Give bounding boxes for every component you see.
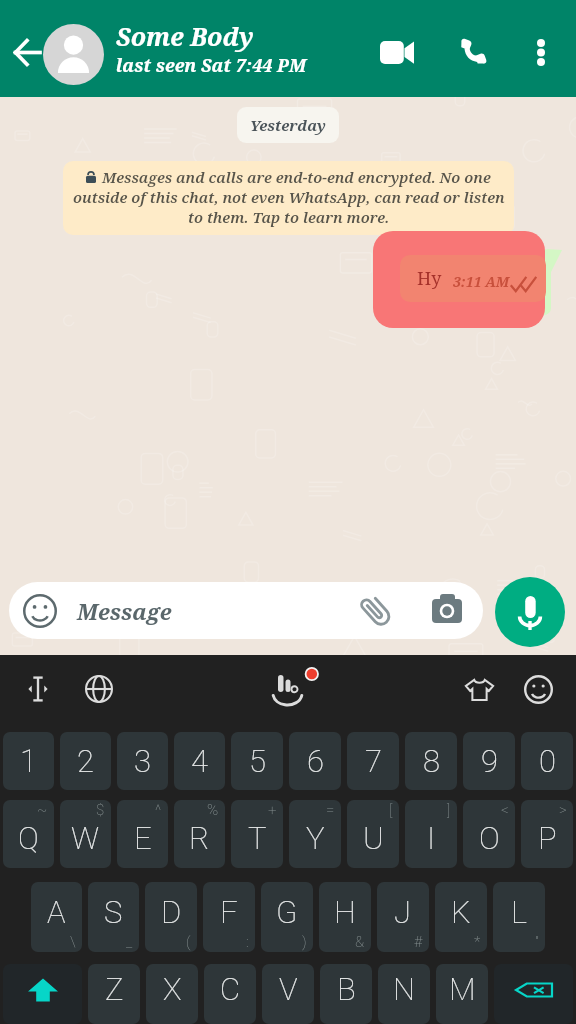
staticText: 4 [191, 743, 208, 779]
staticText: 0 [539, 743, 556, 779]
staticText: F [220, 894, 238, 930]
button[interactable]: C [204, 964, 256, 1024]
button[interactable]: Stickers [455, 665, 503, 713]
staticText: D [161, 894, 182, 930]
button[interactable] [9, 582, 483, 639]
button[interactable]: H [319, 882, 371, 952]
button[interactable]: More options [518, 29, 564, 75]
button[interactable]: M [436, 964, 488, 1024]
button[interactable]: Handwriting [264, 665, 312, 713]
staticText: W [71, 820, 100, 856]
staticText: R [189, 820, 210, 856]
staticText: : [246, 933, 249, 951]
button[interactable]: X [146, 964, 198, 1024]
staticText: S [104, 894, 123, 930]
staticText: ) [302, 933, 307, 951]
staticText: M [449, 971, 476, 1007]
staticText: V [279, 971, 298, 1007]
button[interactable]: Messages and calls are end-to-end encryp… [63, 161, 514, 235]
button[interactable]: K [435, 882, 487, 952]
button[interactable]: Camera [427, 588, 467, 628]
button[interactable]: Text cursor [14, 665, 62, 713]
button[interactable]: Q [3, 800, 54, 868]
staticText: A [47, 894, 66, 930]
button[interactable]: N [378, 964, 430, 1024]
button[interactable]: 9 [463, 732, 515, 790]
staticText: Y [306, 820, 325, 856]
button[interactable]: 7 [347, 732, 399, 790]
button[interactable]: 2 [60, 732, 111, 790]
staticText: ] [447, 801, 451, 819]
button[interactable]: Profile photo [43, 24, 104, 85]
button[interactable]: R [174, 800, 225, 868]
staticText: 1 [20, 743, 37, 779]
button[interactable]: Z [88, 964, 140, 1024]
staticText: to them. Tap to learn more. [188, 207, 390, 227]
button[interactable]: Yesterday [237, 107, 339, 143]
button[interactable]: A [31, 882, 82, 952]
staticText: I [427, 820, 436, 856]
button[interactable]: W [60, 800, 111, 868]
staticText: Some Body [116, 19, 254, 53]
button[interactable]: Backspace [494, 964, 573, 1024]
button[interactable]: 0 [521, 732, 573, 790]
staticText: + [268, 801, 277, 819]
button[interactable]: Call [450, 29, 496, 75]
button[interactable]: 8 [405, 732, 457, 790]
staticText: X [163, 971, 182, 1007]
button[interactable]: Voice message [495, 577, 565, 647]
button[interactable]: I [405, 800, 457, 868]
button[interactable] [373, 231, 545, 328]
button[interactable]: Y [289, 800, 341, 868]
staticText: _ [126, 933, 133, 951]
button[interactable]: L [493, 882, 545, 952]
button[interactable]: V [262, 964, 314, 1024]
staticText: ~ [37, 801, 48, 819]
button[interactable]: G [261, 882, 313, 952]
button[interactable]: J [377, 882, 429, 952]
staticText: & [355, 933, 365, 951]
button[interactable]: 6 [289, 732, 341, 790]
button[interactable]: E [117, 800, 168, 868]
staticText: 8 [423, 743, 440, 779]
button[interactable]: Hy [400, 255, 546, 302]
staticText: K [451, 894, 471, 930]
button[interactable]: Some Body [116, 19, 376, 78]
staticText: T [248, 820, 267, 856]
button[interactable]: D [145, 882, 197, 952]
button[interactable]: Attach [356, 590, 398, 632]
button[interactable]: Shift [3, 964, 82, 1024]
staticText: U [363, 820, 384, 856]
staticText: % [207, 801, 219, 819]
button[interactable]: Video call [374, 29, 420, 75]
button[interactable]: 5 [231, 732, 283, 790]
staticText: C [220, 971, 241, 1007]
staticText: Messages and calls are end-to-end encryp… [102, 167, 491, 187]
staticText: 2 [77, 743, 94, 779]
button[interactable]: Emoji [21, 592, 59, 630]
staticText: last seen Sat 7:44 PM [116, 53, 307, 78]
staticText: N [393, 971, 415, 1007]
button[interactable]: U [347, 800, 399, 868]
button[interactable]: F [203, 882, 255, 952]
button[interactable]: B [320, 964, 372, 1024]
staticText: Hy [417, 266, 442, 291]
staticText: < [501, 801, 509, 819]
staticText: ( [186, 933, 191, 951]
staticText: B [337, 971, 356, 1007]
button[interactable]: 3 [117, 732, 168, 790]
button[interactable]: P [521, 800, 573, 868]
button[interactable]: 1 [3, 732, 54, 790]
button[interactable]: Emoji keyboard [514, 665, 562, 713]
staticText: 3:11 AM [453, 272, 509, 291]
button[interactable]: T [231, 800, 283, 868]
button[interactable]: Language [75, 665, 123, 713]
button[interactable]: Back [2, 28, 52, 76]
button[interactable]: 4 [174, 732, 225, 790]
staticText: 7 [365, 743, 382, 779]
staticText: H [334, 894, 356, 930]
staticText: Yesterday [250, 115, 326, 135]
button[interactable]: O [463, 800, 515, 868]
button[interactable]: S [88, 882, 139, 952]
staticText: 3 [134, 743, 151, 779]
